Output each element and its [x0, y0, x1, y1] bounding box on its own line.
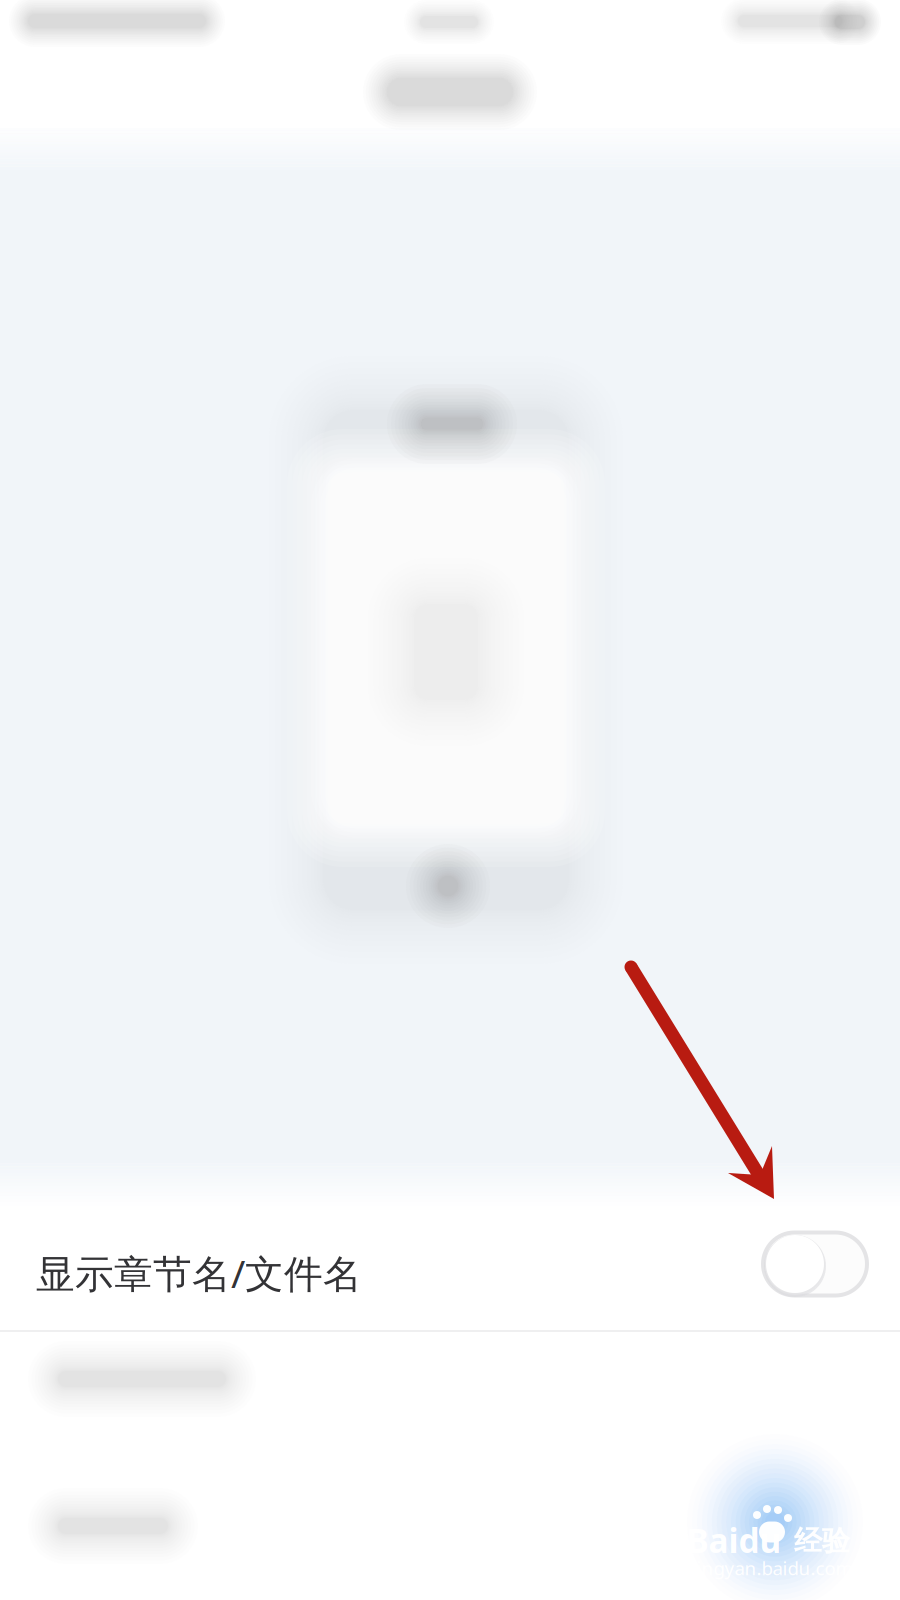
- staticText: 显示章节名/文件名: [36, 1247, 362, 1299]
- staticText: 经验: [794, 1524, 850, 1558]
- staticText: jingyan.baidu.com: [691, 1556, 852, 1580]
- staticText: Baidu: [686, 1518, 781, 1562]
- button[interactable]: 显示章节名/文件名: [0, 1200, 900, 1330]
- button[interactable]: [0, 1332, 900, 1470]
- button[interactable]: [0, 1470, 900, 1600]
